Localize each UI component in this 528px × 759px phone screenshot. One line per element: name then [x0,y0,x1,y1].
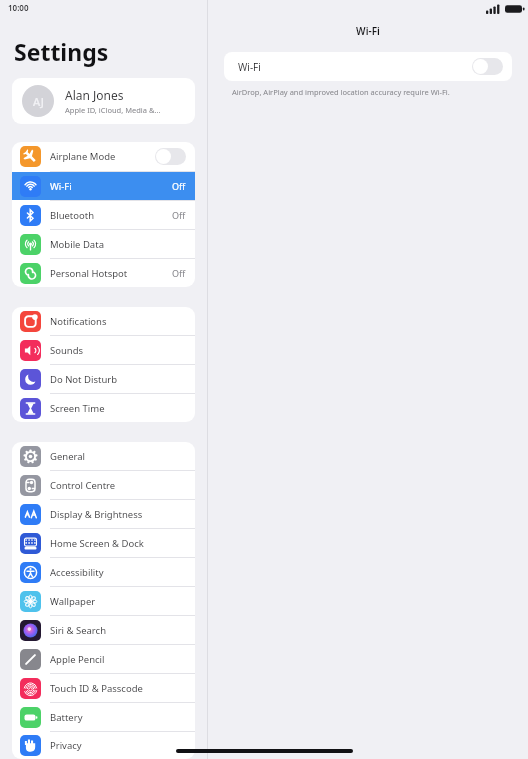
staticText: General [50,450,86,463]
button[interactable]: Toggle off [155,148,186,165]
button[interactable]: Wallpaper [12,587,195,615]
button[interactable]: Sounds [12,336,195,364]
button[interactable]: Battery [12,703,195,731]
button[interactable]: Wi-Fi [224,52,512,81]
staticText: Battery [50,711,83,724]
staticText: Wi-Fi [238,60,261,74]
staticText: Display & Brightness [50,508,143,521]
button[interactable]: Control Centre [12,471,195,499]
staticText: Off [172,267,186,279]
staticText: Control Centre [50,479,116,492]
button[interactable]: Home Screen & Dock [12,529,195,557]
staticText: Apple Pencil [50,653,105,666]
button[interactable]: Bluetooth [12,201,195,229]
staticText: Siri & Search [50,624,107,637]
button[interactable]: Mobile Data [12,230,195,258]
button[interactable]: Apple Pencil [12,645,195,673]
button[interactable]: General [12,442,195,470]
button[interactable]: Accessibility [12,558,195,586]
staticText: AirDrop, AirPlay and improved location a… [232,87,450,97]
staticText: Sounds [50,344,84,357]
button[interactable]: Wi-Fi [12,172,195,200]
button[interactable]: Personal Hotspot [12,259,195,287]
staticText: Apple ID, iCloud, Media &... [65,105,161,115]
staticText: Screen Time [50,402,105,415]
staticText: Home Screen & Dock [50,537,144,550]
staticText: Accessibility [50,566,104,579]
staticText: Off [172,180,186,192]
staticText: Settings [14,36,109,67]
staticText: Mobile Data [50,238,104,251]
button[interactable]: Notifications [12,307,195,335]
staticText: Do Not Disturb [50,373,118,386]
staticText: Wi-Fi [208,24,528,38]
staticText: Bluetooth [50,209,95,222]
button[interactable]: AJ [12,78,195,124]
staticText: Touch ID & Passcode [50,682,143,695]
staticText: Off [172,209,186,221]
button[interactable]: Do Not Disturb [12,365,195,393]
button[interactable]: Airplane Mode [12,142,195,171]
staticText: Personal Hotspot [50,267,128,280]
button[interactable]: Touch ID & Passcode [12,674,195,702]
staticText: AJ [33,94,44,109]
staticText: 10:00 [8,2,29,13]
button[interactable]: Privacy [12,732,195,759]
button[interactable]: Screen Time [12,394,195,422]
staticText: Privacy [50,739,82,752]
staticText: Notifications [50,315,107,328]
staticText: Wi-Fi [50,180,72,193]
button[interactable]: Toggle off [472,58,503,75]
staticText: Alan Jones [65,87,124,103]
button[interactable]: Display & Brightness [12,500,195,528]
button[interactable]: Siri & Search [12,616,195,644]
staticText: Airplane Mode [50,150,116,163]
staticText: Wallpaper [50,595,96,608]
